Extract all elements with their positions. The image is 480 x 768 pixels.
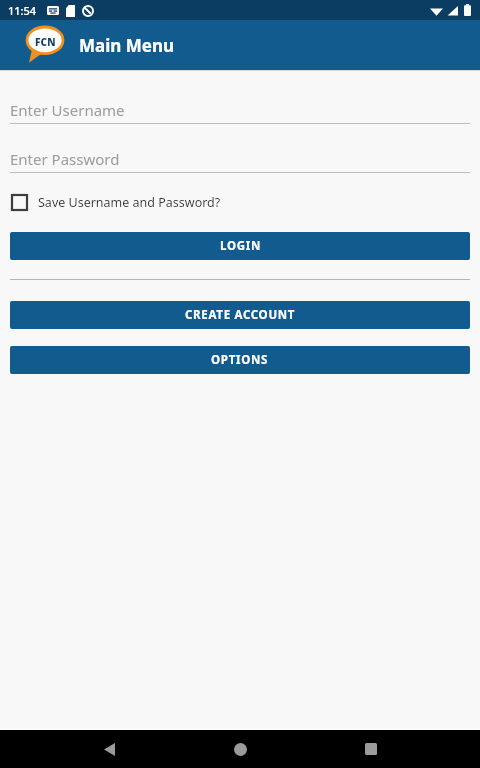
staticText: 11:54 [8,3,37,18]
staticText: OPTIONS [211,352,269,368]
staticText: Main Menu [79,34,175,57]
button[interactable]: Home [218,730,262,768]
staticText: Enter Username [10,100,125,120]
staticText: Enter Password [10,149,120,169]
button[interactable]: Enter Username [10,97,470,124]
button[interactable]: LOGIN [10,232,470,260]
button[interactable]: Back [87,730,131,768]
button[interactable]: Recent apps [349,730,393,768]
button[interactable]: Save Username and Password? [10,189,470,216]
button[interactable]: Enter Password [10,146,470,173]
staticText: FCN [35,35,56,49]
button[interactable]: OPTIONS [10,346,470,374]
button[interactable]: CREATE ACCOUNT [10,301,470,329]
staticText: LOGIN [220,238,261,254]
staticText: CREATE ACCOUNT [185,307,296,323]
staticText: Save Username and Password? [38,194,221,211]
